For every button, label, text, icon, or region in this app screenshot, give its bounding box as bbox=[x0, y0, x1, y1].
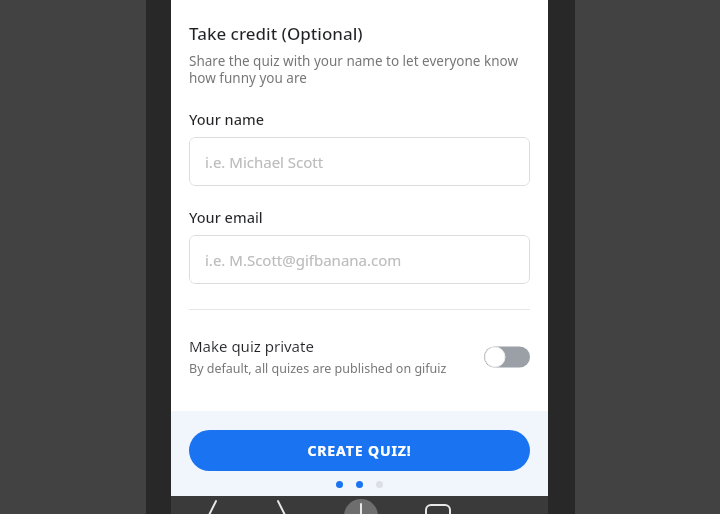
staticText: Your email bbox=[189, 207, 263, 227]
staticText: i.e. Michael Scott bbox=[205, 152, 324, 172]
button[interactable]: Home bbox=[339, 496, 383, 514]
staticText: By default, all quizes are published on … bbox=[189, 360, 447, 377]
staticText: Share the quiz with your name to let eve… bbox=[189, 52, 520, 87]
button[interactable]: Make quiz private toggle bbox=[483, 344, 531, 370]
button[interactable]: Back bbox=[189, 496, 233, 514]
button[interactable]: Make quiz private bbox=[171, 334, 548, 379]
button[interactable]: Recent apps bbox=[416, 496, 460, 514]
staticText: Make quiz private bbox=[189, 336, 314, 356]
button[interactable]: i.e. M.Scott@gifbanana.com bbox=[189, 235, 530, 284]
staticText: i.e. M.Scott@gifbanana.com bbox=[205, 250, 402, 270]
staticText: Your name bbox=[189, 109, 265, 129]
button[interactable]: i.e. Michael Scott bbox=[189, 137, 530, 186]
button[interactable]: CREATE QUIZ! bbox=[189, 430, 530, 471]
staticText: CREATE QUIZ! bbox=[307, 441, 412, 460]
button[interactable]: Forward bbox=[261, 496, 305, 514]
staticText: Take credit (Optional) bbox=[189, 22, 363, 45]
